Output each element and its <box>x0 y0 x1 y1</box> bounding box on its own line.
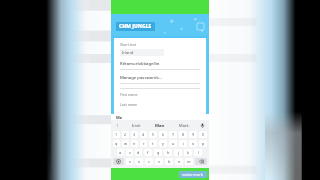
staticText: v <box>158 159 160 164</box>
staticText: p <box>202 141 205 146</box>
staticText: k <box>187 150 190 155</box>
staticText: Last name <box>120 102 138 107</box>
button[interactable]: Short text <box>120 42 200 56</box>
staticText: 0 <box>202 132 205 137</box>
button[interactable]: t <box>149 140 157 147</box>
staticText: 9 <box>192 132 195 137</box>
button[interactable]: z <box>126 158 133 165</box>
button[interactable]: l <box>194 149 202 156</box>
staticText: c <box>148 159 150 164</box>
button[interactable]: a <box>117 149 124 156</box>
staticText: x <box>138 159 141 164</box>
staticText: Mark <box>179 123 189 128</box>
button[interactable]: Backspace <box>195 158 207 165</box>
button[interactable]: y <box>159 140 167 147</box>
staticText: d <box>137 150 140 155</box>
staticText: 4 <box>142 132 145 137</box>
button[interactable]: 5 <box>149 131 157 138</box>
staticText: u <box>172 141 175 146</box>
staticText: Man <box>155 123 165 129</box>
button[interactable]: o <box>189 140 197 147</box>
button[interactable]: Irish <box>124 121 148 130</box>
staticText: i <box>183 141 184 146</box>
staticText: Irland <box>122 50 134 55</box>
staticText: l <box>198 150 199 155</box>
staticText: j <box>178 150 179 155</box>
staticText: Irish <box>132 123 141 128</box>
button[interactable]: 8 <box>179 131 187 138</box>
staticText: watermark <box>182 172 204 177</box>
staticText: r <box>143 141 145 146</box>
button[interactable]: 3 <box>131 131 138 138</box>
button[interactable]: q <box>113 140 120 147</box>
staticText: Rétamurlokbagellin <box>120 61 160 67</box>
staticText: 8 <box>182 132 185 137</box>
button[interactable]: d <box>135 149 142 156</box>
button[interactable]: Manage passwords... <box>120 75 200 84</box>
button[interactable]: 7 <box>169 131 177 138</box>
button[interactable]: n <box>175 158 183 165</box>
button[interactable]: 6 <box>159 131 167 138</box>
button[interactable]: h <box>164 149 172 156</box>
staticText: 2 <box>124 132 127 137</box>
button[interactable]: 4 <box>140 131 147 138</box>
button[interactable]: v <box>155 158 163 165</box>
button[interactable]: 2 <box>122 131 129 138</box>
button[interactable]: s <box>126 149 133 156</box>
button[interactable]: w <box>122 140 129 147</box>
button[interactable]: i <box>179 140 187 147</box>
button[interactable]: e <box>131 140 138 147</box>
button[interactable]: u <box>169 140 177 147</box>
button[interactable]: Shift <box>113 158 124 165</box>
button[interactable]: ! <box>112 121 124 130</box>
button[interactable]: g <box>154 149 162 156</box>
staticText: First name <box>120 92 138 97</box>
staticText: e <box>133 141 136 146</box>
button[interactable]: c <box>145 158 153 165</box>
button[interactable]: CHM JUNGLE <box>116 22 155 31</box>
staticText: n <box>178 159 181 164</box>
staticText: 7 <box>172 132 175 137</box>
staticText: b <box>168 159 171 164</box>
button[interactable]: 9 <box>189 131 197 138</box>
staticText: w <box>124 141 127 146</box>
button[interactable]: Rétamurlokbagellin <box>120 61 200 70</box>
button[interactable]: Menu <box>195 21 205 31</box>
staticText: Manage passwords... <box>120 75 163 81</box>
staticText: f <box>147 150 149 155</box>
button[interactable]: b <box>165 158 173 165</box>
staticText: 1 <box>115 132 118 137</box>
button[interactable]: 1 <box>113 131 120 138</box>
staticText: 3 <box>133 132 136 137</box>
staticText: y <box>162 141 164 146</box>
staticText: a <box>119 150 122 155</box>
staticText: o <box>192 141 195 146</box>
staticText: m <box>187 159 191 164</box>
button[interactable]: k <box>184 149 192 156</box>
button[interactable]: f <box>144 149 152 156</box>
staticText: ! <box>117 123 119 128</box>
button[interactable]: p <box>199 140 207 147</box>
staticText: Me <box>116 115 123 120</box>
staticText: Short text <box>120 42 137 47</box>
staticText: h <box>167 150 170 155</box>
button[interactable]: j <box>174 149 182 156</box>
staticText: s <box>129 150 131 155</box>
button[interactable]: x <box>135 158 143 165</box>
staticText: 6 <box>162 132 165 137</box>
button[interactable]: Mark <box>172 121 196 130</box>
button[interactable]: Man <box>148 121 172 130</box>
staticText: z <box>129 159 131 164</box>
button[interactable]: 0 <box>199 131 207 138</box>
staticText: CHM JUNGLE <box>119 23 152 30</box>
staticText: q <box>115 141 118 146</box>
button[interactable]: Voice input <box>196 121 208 130</box>
staticText: t <box>152 141 154 146</box>
button[interactable]: r <box>140 140 147 147</box>
staticText: 5 <box>152 132 155 137</box>
button[interactable]: m <box>185 158 193 165</box>
staticText: g <box>157 150 160 155</box>
